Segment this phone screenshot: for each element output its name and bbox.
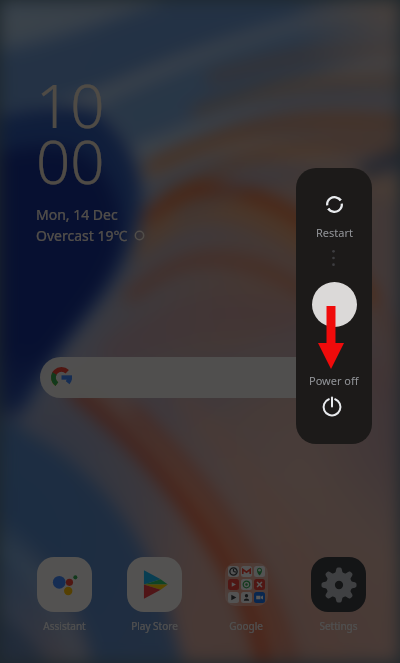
button[interactable] [40, 357, 362, 398]
button[interactable]: Assistant [20, 557, 108, 633]
button[interactable]: Restart [296, 196, 372, 240]
button[interactable]: Play Store [110, 557, 198, 633]
button[interactable]: Power off [312, 282, 357, 327]
staticText: Google [229, 619, 263, 633]
staticText: Restart [316, 225, 353, 240]
staticText: Play Store [131, 619, 178, 633]
staticText: 00 [36, 120, 105, 202]
staticText: Assistant [43, 619, 86, 633]
other: Tap power off [318, 306, 344, 369]
staticText: 10 [36, 64, 105, 146]
button[interactable]: Google [202, 557, 290, 633]
staticText: Settings [319, 619, 358, 633]
staticText: Overcast 19℃ [36, 226, 128, 245]
staticText: Power off [309, 373, 359, 388]
staticText: Mon, 14 Dec [36, 205, 118, 224]
button[interactable]: Settings [294, 557, 382, 633]
button[interactable]: Power [322, 397, 342, 417]
